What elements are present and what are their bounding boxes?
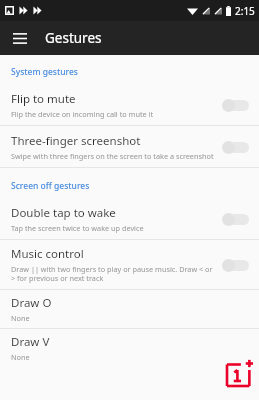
staticText: 2:15	[235, 4, 255, 18]
staticText: Draw || with two fingers to play or paus…	[11, 264, 216, 283]
staticText: None	[11, 352, 30, 362]
button[interactable]: Music control	[0, 240, 259, 289]
button[interactable]: Draw V	[0, 329, 259, 367]
staticText: Draw V	[11, 334, 50, 350]
button[interactable]: Draw O	[0, 290, 259, 328]
staticText: Flip the device on incoming call to mute…	[11, 109, 154, 119]
button[interactable]: Open navigation menu	[8, 26, 32, 50]
staticText: System gestures	[11, 66, 78, 78]
button[interactable]: Toggle	[222, 97, 250, 113]
staticText: Tap the screen twice to wake up device	[11, 223, 144, 233]
staticText: Screen off gestures	[11, 180, 90, 192]
button[interactable]: Toggle	[222, 211, 250, 227]
staticText: Music control	[11, 246, 84, 262]
staticText: Gestures	[45, 29, 102, 47]
staticText: Flip to mute	[11, 91, 76, 107]
staticText: Swipe with three fingers on the screen t…	[11, 151, 214, 161]
button[interactable]: Three-finger screenshot	[0, 126, 259, 167]
staticText: Draw O	[11, 295, 52, 311]
staticText: None	[11, 313, 30, 323]
button[interactable]: Flip to mute	[0, 84, 259, 125]
staticText: Double tap to wake	[11, 205, 116, 221]
button[interactable]: Double tap to wake	[0, 198, 259, 239]
button[interactable]: Toggle	[222, 139, 250, 155]
button[interactable]: Toggle	[222, 257, 250, 273]
staticText: Three-finger screenshot	[11, 133, 141, 149]
